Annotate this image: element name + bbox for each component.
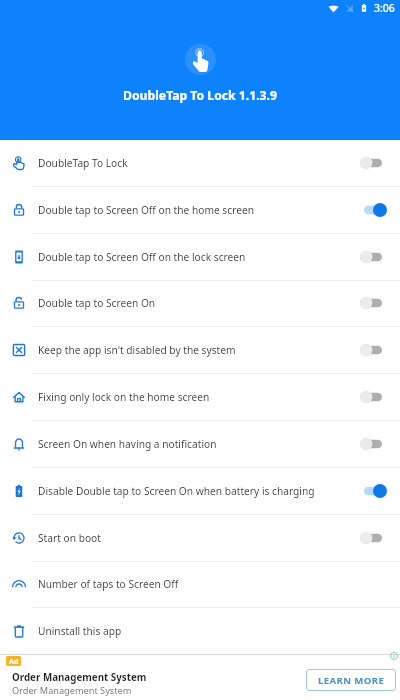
staticText: Start on boot — [38, 531, 348, 545]
button[interactable]: Toggle off — [348, 431, 388, 457]
button[interactable]: Toggle off — [348, 337, 388, 363]
button[interactable]: Toggle off — [348, 384, 388, 410]
staticText: Keep the app isn't disabled by the syste… — [38, 343, 348, 357]
staticText: DoubleTap To Lock — [38, 156, 348, 170]
button[interactable]: Keep the app isn't disabled by the syste… — [0, 327, 400, 373]
button[interactable]: Toggle off — [348, 525, 388, 551]
button[interactable]: Fixing only lock on the home screen — [0, 374, 400, 420]
staticText: Double tap to Screen Off on the lock scr… — [38, 250, 348, 264]
staticText: Order Management System — [12, 684, 132, 697]
button[interactable]: LEARN MORE — [306, 669, 396, 691]
button[interactable]: DoubleTap To Lock — [0, 140, 400, 186]
button[interactable]: Double tap to Screen Off on the home scr… — [0, 187, 400, 233]
staticText: Number of taps to Screen Off — [38, 577, 388, 591]
staticText: Double tap to Screen Off on the home scr… — [38, 203, 348, 217]
button[interactable]: Double tap to Screen On — [0, 280, 400, 326]
staticText: Order Management System — [12, 671, 147, 684]
staticText: Fixing only lock on the home screen — [38, 390, 348, 404]
staticText: Ad — [9, 656, 19, 666]
button[interactable]: Start on boot — [0, 515, 400, 561]
staticText: Double tap to Screen On — [38, 296, 348, 310]
button[interactable]: Toggle on — [348, 197, 388, 223]
staticText: LEARN MORE — [318, 674, 385, 687]
button[interactable]: Ad info — [390, 652, 398, 660]
button[interactable]: Toggle off — [348, 290, 388, 316]
button[interactable]: Toggle off — [348, 150, 388, 176]
button[interactable]: Disable Double tap to Screen On when bat… — [0, 468, 400, 514]
button[interactable]: Number of taps to Screen Off — [0, 561, 400, 607]
staticText: DoubleTap To Lock 1.1.3.9 — [0, 87, 400, 104]
button[interactable]: Toggle off — [348, 244, 388, 270]
staticText: Screen On when having a notification — [38, 437, 348, 451]
staticText: Uninstall this app — [38, 624, 388, 638]
staticText: 3:06 — [374, 1, 395, 15]
button[interactable]: Double tap to Screen Off on the lock scr… — [0, 234, 400, 280]
button[interactable]: Screen On when having a notification — [0, 421, 400, 467]
button[interactable]: Uninstall this app — [0, 608, 400, 654]
staticText: Disable Double tap to Screen On when bat… — [38, 484, 348, 498]
button[interactable]: Toggle on — [348, 478, 388, 504]
